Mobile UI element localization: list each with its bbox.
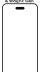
staticText: & Weight Gain <box>5 0 34 3</box>
